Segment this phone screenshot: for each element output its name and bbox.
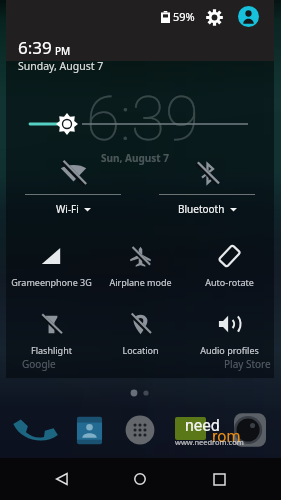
staticText: Bluetooth xyxy=(178,202,225,216)
button[interactable]: Auto-rotate xyxy=(185,237,274,305)
staticText: 59% xyxy=(173,9,195,24)
button[interactable]: Wi-Fi xyxy=(6,153,140,223)
button[interactable]: Grameenphone 3G xyxy=(6,237,96,305)
staticText: need xyxy=(185,416,220,435)
staticText: 6:39 xyxy=(18,36,52,59)
button[interactable]: Settings xyxy=(203,6,225,28)
staticText: www.needrom.com xyxy=(175,437,244,447)
staticText: Grameenphone 3G xyxy=(11,276,92,288)
button[interactable]: Back xyxy=(42,459,82,499)
staticText: Sunday, August 7 xyxy=(18,59,104,73)
staticText: Wi-Fi xyxy=(56,202,79,216)
button[interactable]: Bluetooth xyxy=(140,153,274,223)
button[interactable]: Airplane mode xyxy=(96,237,185,305)
staticText: 6:39 xyxy=(86,82,199,155)
staticText: rom xyxy=(212,427,241,446)
staticText: Google xyxy=(22,357,56,371)
staticText: Audio profiles xyxy=(200,344,259,356)
staticText: Location xyxy=(122,344,159,356)
button[interactable]: Location xyxy=(96,305,185,373)
staticText: PM xyxy=(55,44,71,58)
staticText: Play Store xyxy=(224,357,271,371)
button[interactable]: Home xyxy=(120,459,160,499)
staticText: Auto-rotate xyxy=(205,276,254,288)
button[interactable]: Recent apps xyxy=(199,459,239,499)
button[interactable]: Audio profiles xyxy=(185,305,274,373)
staticText: Flashlight xyxy=(31,344,72,356)
button[interactable]: Flashlight xyxy=(6,305,96,373)
staticText: Airplane mode xyxy=(109,276,172,288)
button[interactable]: User profile xyxy=(238,6,259,27)
staticText: Sun, August 7 xyxy=(101,151,169,165)
